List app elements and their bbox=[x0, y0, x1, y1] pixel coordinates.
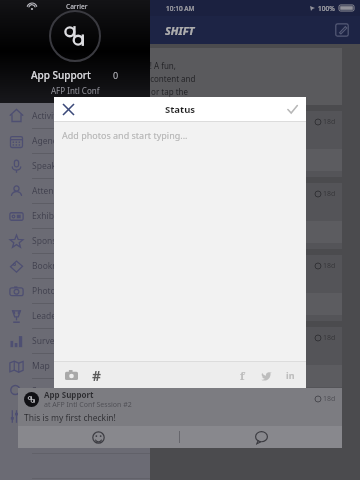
button[interactable]: Add photo bbox=[61, 365, 81, 385]
button[interactable]: Attendees bbox=[0, 179, 150, 203]
staticText: This is my first checkin! bbox=[24, 412, 116, 424]
button[interactable]: Switch Event / Logout bbox=[0, 404, 150, 428]
staticText: 100% bbox=[318, 4, 335, 13]
button[interactable]: Close bbox=[57, 98, 79, 120]
staticText: App Support bbox=[44, 189, 94, 200]
staticText: Search bbox=[32, 385, 59, 397]
staticText: in bbox=[286, 369, 295, 381]
staticText: Add photos and start typing... bbox=[62, 129, 188, 141]
staticText: Exhibitors bbox=[32, 210, 72, 222]
staticText: each other! Swipe left-to-right ➞ or tap… bbox=[24, 86, 189, 97]
staticText: 18d bbox=[323, 333, 336, 343]
button[interactable]: Add photos and start typing... bbox=[54, 122, 306, 361]
button[interactable]: Compose post bbox=[330, 18, 354, 42]
button[interactable]: Hashtag bbox=[87, 365, 107, 385]
button[interactable] bbox=[18, 426, 179, 448]
staticText: Speakers bbox=[32, 160, 69, 172]
button[interactable]: Leaderboard bbox=[0, 304, 150, 328]
staticText: 18d bbox=[323, 394, 336, 404]
staticText: Photos bbox=[32, 285, 60, 297]
staticText: App Support bbox=[31, 68, 91, 82]
staticText: AFP Intl Conf bbox=[51, 85, 100, 96]
staticText: 18d bbox=[323, 261, 336, 271]
staticText: Attendees bbox=[32, 185, 73, 197]
staticText: f bbox=[240, 368, 245, 383]
staticText: at AFP Intl Conf Session #2 bbox=[44, 400, 132, 410]
button[interactable]: Surveys bbox=[0, 329, 150, 353]
staticText: Status bbox=[165, 103, 196, 116]
button[interactable]: Share to Twitter bbox=[257, 366, 275, 384]
button[interactable]: Agenda bbox=[0, 129, 150, 153]
staticText: Welcome to the AFP Intl Conf app! A fun, bbox=[24, 60, 176, 71]
staticText: Promoted Post bbox=[24, 49, 73, 59]
staticText: Leaderboard bbox=[32, 310, 84, 322]
button[interactable]: Share to Facebook bbox=[233, 366, 251, 384]
button[interactable]: Exhibitors bbox=[0, 204, 150, 228]
staticText: Carrier bbox=[66, 2, 88, 11]
staticText: App Support bbox=[44, 261, 94, 272]
staticText: Bookmarks bbox=[32, 260, 78, 272]
staticText: # bbox=[92, 366, 102, 385]
staticText: 10:10 AM bbox=[166, 4, 195, 13]
staticText: App Support bbox=[44, 117, 94, 128]
button[interactable]: Photos bbox=[0, 279, 150, 303]
button[interactable]: Sponsors bbox=[0, 229, 150, 253]
staticText: Map bbox=[32, 360, 50, 372]
staticText: 18d bbox=[323, 117, 336, 127]
staticText: Switch Event / Logout bbox=[32, 410, 119, 422]
button[interactable]: Map bbox=[0, 354, 150, 378]
button[interactable]: Activity bbox=[0, 103, 150, 128]
staticText: Surveys bbox=[32, 335, 63, 347]
button[interactable]: Share to LinkedIn bbox=[281, 366, 299, 384]
staticText: 0 bbox=[113, 69, 119, 81]
button[interactable] bbox=[180, 426, 342, 448]
button[interactable]: Speakers bbox=[0, 154, 150, 178]
staticText: Activity bbox=[32, 110, 61, 122]
button[interactable]: Post bbox=[281, 98, 303, 120]
staticText: SHIFT bbox=[165, 23, 195, 38]
staticText: App Support bbox=[44, 333, 94, 344]
staticText: mobile way to engage with event content … bbox=[24, 73, 196, 84]
staticText: 18d bbox=[323, 189, 336, 199]
staticText: Sponsors bbox=[32, 235, 70, 247]
button[interactable]: Bookmarks bbox=[0, 254, 150, 278]
staticText: App Support bbox=[44, 389, 94, 400]
staticText: Agenda bbox=[32, 135, 63, 147]
button[interactable]: Search bbox=[0, 379, 150, 403]
